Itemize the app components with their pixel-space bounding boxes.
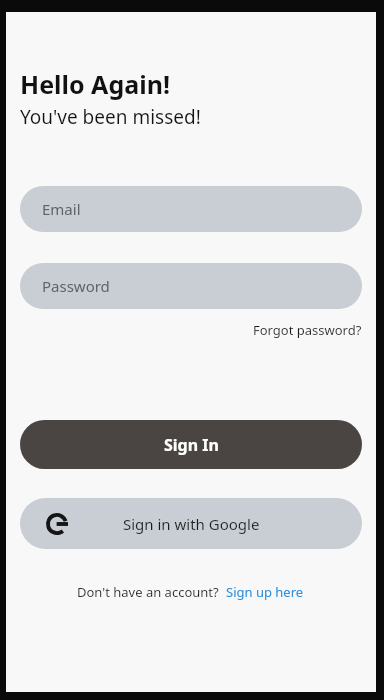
staticText: Sign in with Google [123, 514, 260, 534]
button[interactable]: Forgot password? [251, 318, 364, 342]
staticText: Forgot password? [253, 321, 362, 339]
staticText: Password [42, 276, 110, 296]
staticText: Sign In [164, 434, 219, 456]
button[interactable]: Sign up here [225, 580, 305, 604]
button[interactable]: Sign in with Google [20, 498, 362, 549]
button[interactable]: Email [20, 186, 362, 232]
staticText: Email [42, 199, 81, 219]
staticText: Hello Again! [20, 67, 170, 101]
staticText: You've been missed! [20, 104, 201, 130]
button[interactable]: Password [20, 263, 362, 309]
button[interactable]: Sign In [20, 420, 362, 469]
other: Google logo [46, 513, 68, 535]
staticText: Sign up here [226, 583, 304, 601]
staticText: Don't have an account? [77, 583, 219, 601]
